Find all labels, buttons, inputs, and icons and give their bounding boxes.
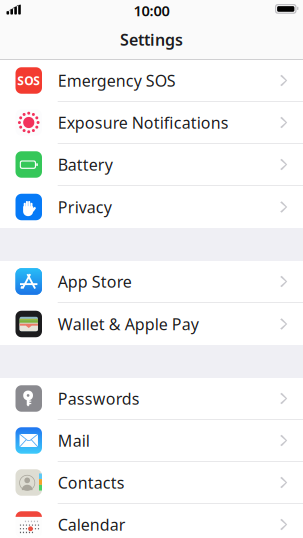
staticText: Exposure Notifications xyxy=(58,112,229,133)
staticText: Settings xyxy=(120,29,183,50)
staticText: Privacy xyxy=(58,196,112,218)
staticText: Mail xyxy=(58,430,90,451)
staticText: Emergency SOS xyxy=(58,70,176,91)
staticText: 10:00 xyxy=(133,1,169,20)
button[interactable]: Passwords xyxy=(0,378,303,420)
staticText: Passwords xyxy=(58,388,140,409)
staticText: App Store xyxy=(58,271,132,292)
button[interactable]: SOS xyxy=(0,60,303,102)
button[interactable]: Calendar xyxy=(0,504,303,538)
button[interactable]: Privacy xyxy=(0,186,303,228)
button[interactable]: Contacts xyxy=(0,462,303,504)
button[interactable]: App Store xyxy=(0,261,303,303)
button[interactable]: Battery xyxy=(0,144,303,186)
staticText: Contacts xyxy=(58,472,125,493)
button[interactable]: Settings xyxy=(0,20,303,59)
button[interactable]: Wallet & Apple Pay xyxy=(0,303,303,345)
staticText: Calendar xyxy=(58,514,126,535)
staticText: SOS xyxy=(17,72,40,88)
button[interactable]: Exposure Notifications xyxy=(0,102,303,144)
button[interactable]: Mail xyxy=(0,420,303,462)
staticText: Battery xyxy=(58,154,113,175)
staticText: Wallet & Apple Pay xyxy=(58,313,199,335)
